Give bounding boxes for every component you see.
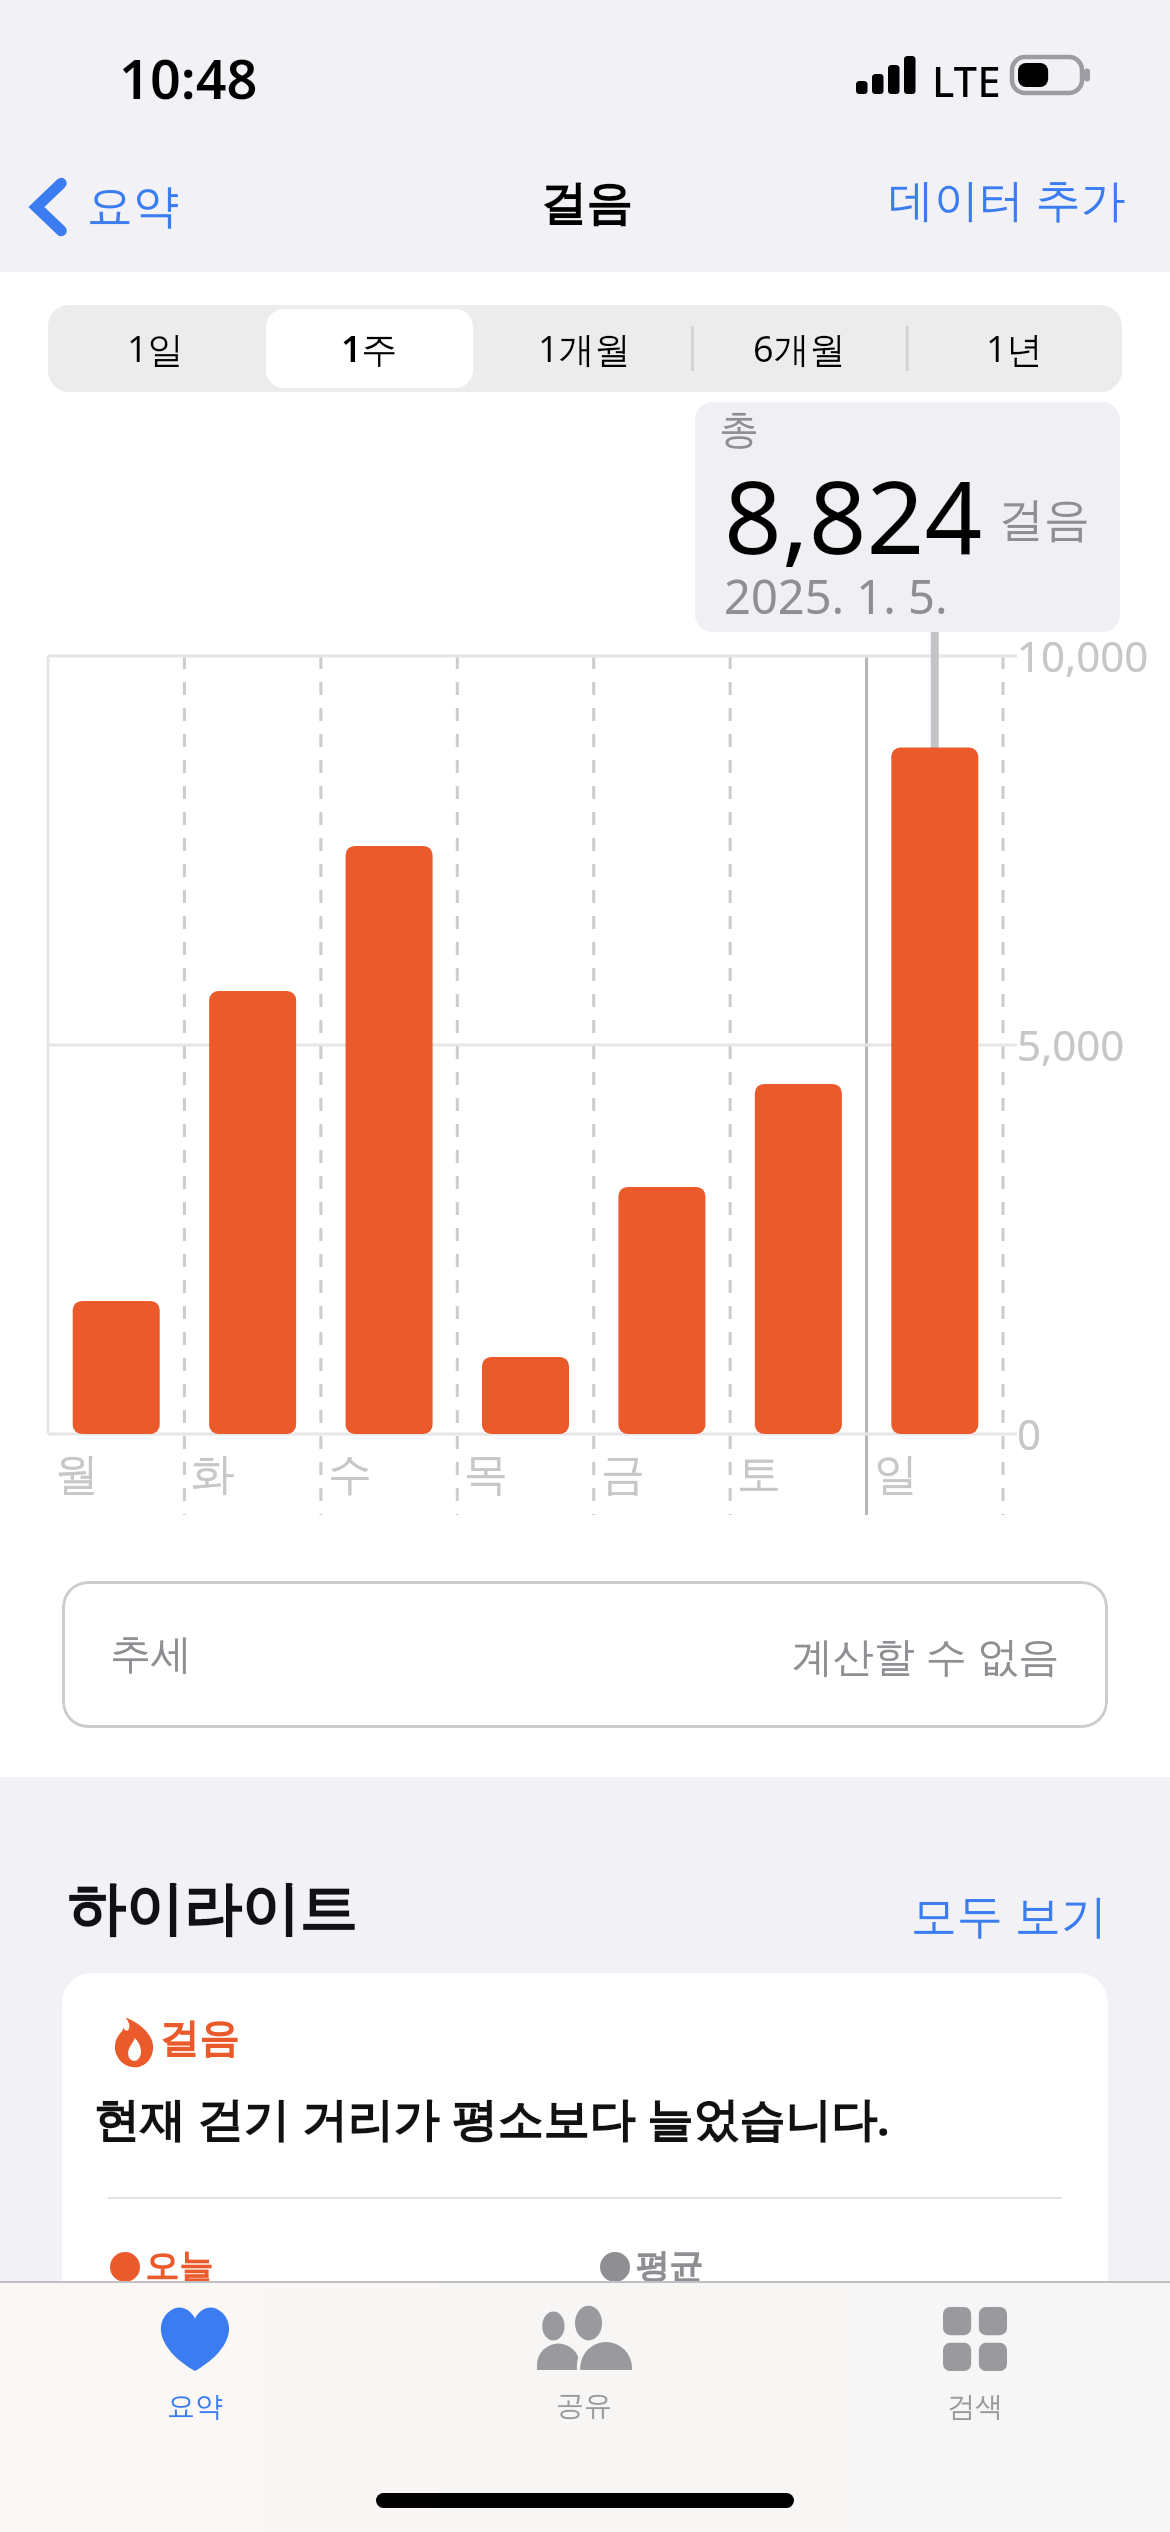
staticText: 1일: [127, 324, 184, 373]
staticText: 요약: [87, 178, 179, 236]
staticText: 추세: [110, 1629, 192, 1681]
staticText: 걸음: [159, 2013, 239, 2063]
button[interactable]: Browse: [865, 2292, 1085, 2424]
staticText: 월: [55, 1447, 99, 1502]
staticText: 요약: [167, 2389, 223, 2424]
staticText: 현재 걷기 거리가 평소보다 늘었습니다.: [93, 2087, 890, 2150]
other: Summary: [156, 2307, 234, 2371]
button[interactable]: Back: [17, 161, 193, 253]
staticText: 0: [1017, 1405, 1042, 1462]
staticText: 오늘: [145, 2245, 213, 2288]
staticText: 5,000: [1017, 1016, 1125, 1073]
staticText: 데이터 추가: [889, 168, 1126, 229]
staticText: 1년: [986, 324, 1043, 373]
other: Back: [31, 178, 67, 236]
button[interactable]: Sharing: [474, 2292, 694, 2423]
staticText: 토: [737, 1447, 781, 1502]
button[interactable]: 6개월: [696, 309, 903, 388]
staticText: 2025. 1. 5.: [724, 564, 948, 628]
button[interactable]: Summary: [85, 2292, 305, 2424]
staticText: 일: [874, 1447, 918, 1502]
other: Sharing: [537, 2307, 632, 2370]
button[interactable]: 1년: [911, 309, 1118, 388]
button[interactable]: 1주: [266, 309, 473, 388]
staticText: 공유: [556, 2388, 612, 2423]
staticText: 걸음: [540, 175, 632, 233]
other: Browse: [943, 2307, 1007, 2371]
staticText: 걸음: [998, 491, 1090, 549]
staticText: 6개월: [753, 324, 846, 373]
staticText: 평균: [635, 2245, 703, 2288]
button[interactable]: 1개월: [481, 309, 688, 388]
staticText: 화: [191, 1447, 235, 1502]
button[interactable]: 데이터 추가: [869, 152, 1146, 244]
staticText: 총: [719, 404, 759, 454]
staticText: 8,824: [724, 446, 983, 584]
staticText: 검색: [947, 2389, 1003, 2424]
staticText: 모두 보기: [911, 1883, 1107, 1946]
staticText: 하이라이트: [67, 1873, 357, 1946]
button[interactable]: 1일: [52, 309, 258, 388]
staticText: 계산할 수 없음: [792, 1627, 1060, 1683]
button[interactable]: 모두 보기: [903, 1875, 1115, 1954]
button[interactable]: 걸음: [62, 1973, 1108, 2333]
staticText: 1주: [341, 324, 398, 373]
staticText: 수: [328, 1447, 372, 1502]
staticText: 10:48: [119, 41, 258, 115]
staticText: 금: [601, 1447, 645, 1502]
staticText: LTE: [932, 52, 1001, 109]
staticText: 10,000: [1017, 627, 1149, 684]
button[interactable]: 추세: [62, 1581, 1108, 1728]
staticText: 목: [464, 1447, 508, 1502]
staticText: 1개월: [538, 324, 631, 373]
